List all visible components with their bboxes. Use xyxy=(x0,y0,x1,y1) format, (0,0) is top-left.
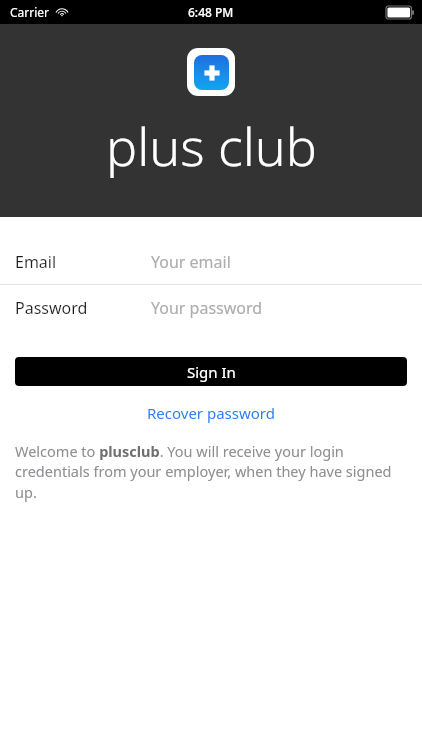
button[interactable]: Sign In xyxy=(15,357,407,386)
button[interactable]: Recover password xyxy=(137,399,285,427)
staticText: 6:48 PM xyxy=(188,4,234,20)
staticText: Email xyxy=(15,251,57,273)
staticText: plus club xyxy=(106,110,317,181)
button[interactable]: Password xyxy=(0,285,422,330)
staticText: Carrier xyxy=(10,4,50,20)
staticText: Password xyxy=(15,297,88,319)
staticText: Welcome to plusclub. You will receive yo… xyxy=(15,441,407,503)
staticText: Your password xyxy=(151,297,263,319)
staticText: Your email xyxy=(151,251,231,273)
staticText: Sign In xyxy=(187,362,236,382)
button[interactable]: Email xyxy=(0,239,422,284)
